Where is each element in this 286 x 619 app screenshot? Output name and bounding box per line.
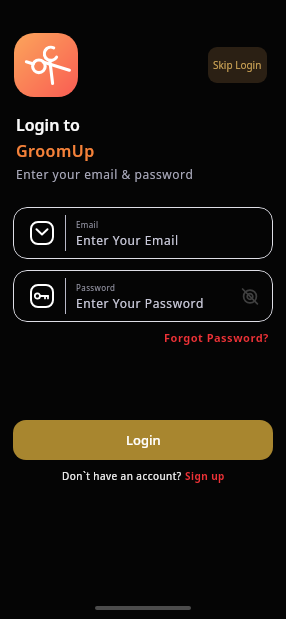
button[interactable]: Email — [13, 207, 273, 259]
staticText: Don`t have an account? — [62, 469, 185, 483]
button[interactable]: Login — [13, 420, 273, 460]
staticText: Email — [76, 219, 99, 230]
staticText: Login to — [16, 114, 80, 136]
staticText: Enter Your Password — [76, 295, 204, 311]
button[interactable] — [240, 286, 260, 306]
button[interactable]: Skip Login — [208, 47, 267, 83]
staticText: Login — [126, 431, 161, 449]
staticText: GroomUp — [16, 140, 95, 162]
staticText: Password — [76, 282, 116, 293]
button[interactable] — [14, 33, 78, 97]
button[interactable]: Sign up — [185, 469, 225, 483]
button[interactable]: Password — [13, 270, 273, 322]
staticText: Skip Login — [213, 58, 262, 72]
staticText: Enter Your Email — [76, 232, 179, 248]
button[interactable]: Forgot Password? — [164, 330, 269, 345]
staticText: Enter your email & password — [16, 166, 194, 182]
